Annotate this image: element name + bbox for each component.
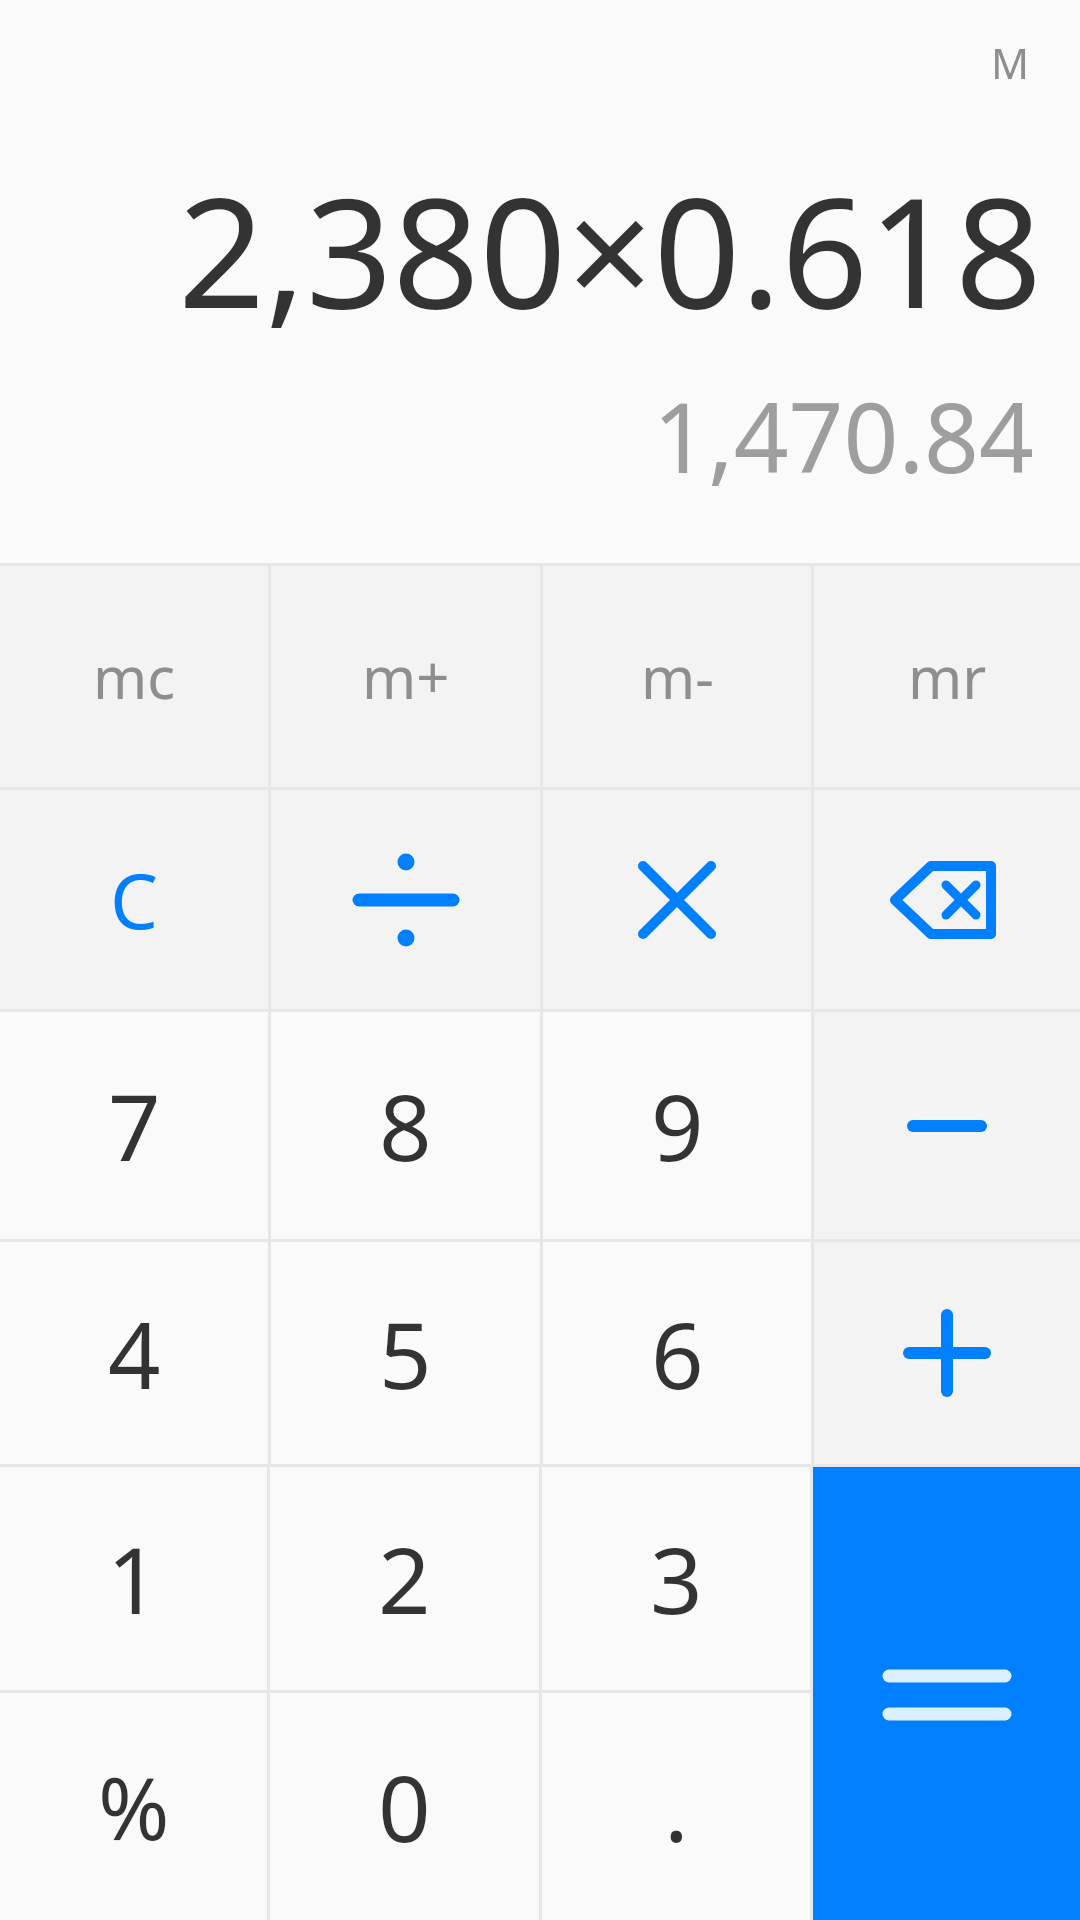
button[interactable]: 5	[271, 1242, 540, 1464]
staticText: mc	[93, 637, 176, 716]
staticText: 5	[379, 1291, 432, 1416]
button[interactable]: 9	[543, 1012, 811, 1239]
button[interactable]: 4	[0, 1242, 268, 1464]
button[interactable]: Backspace	[814, 790, 1080, 1009]
button[interactable]: 7	[0, 1012, 268, 1239]
staticText: 1	[107, 1516, 160, 1641]
button[interactable]: Minus	[814, 1012, 1080, 1239]
staticText: 2	[378, 1516, 431, 1641]
staticText: m-	[641, 637, 714, 716]
button[interactable]: Divide	[271, 790, 540, 1009]
staticText: 7	[108, 1063, 161, 1188]
staticText: 8	[379, 1063, 432, 1188]
button[interactable]: m+	[271, 566, 540, 787]
staticText: M	[991, 34, 1030, 91]
button[interactable]: %	[0, 1693, 267, 1920]
button[interactable]: Equals	[813, 1467, 1080, 1920]
button[interactable]: Plus	[814, 1242, 1080, 1464]
staticText: 4	[108, 1291, 161, 1416]
staticText: C	[110, 848, 159, 952]
staticText: .	[664, 1744, 689, 1869]
button[interactable]: Multiply	[543, 790, 811, 1009]
button[interactable]: .	[542, 1693, 810, 1920]
button[interactable]: 6	[543, 1242, 811, 1464]
staticText: mr	[908, 637, 987, 716]
staticText: 0	[378, 1744, 431, 1869]
button[interactable]: 8	[271, 1012, 540, 1239]
button[interactable]: mc	[0, 566, 268, 787]
button[interactable]: 1	[0, 1467, 267, 1690]
staticText: 6	[651, 1291, 704, 1416]
staticText: m+	[362, 637, 450, 716]
button[interactable]: 2	[270, 1467, 539, 1690]
staticText: 3	[650, 1516, 703, 1641]
button[interactable]: m-	[543, 566, 811, 787]
button[interactable]: C	[0, 790, 268, 1009]
button[interactable]: 3	[542, 1467, 810, 1690]
staticText: %	[98, 1748, 170, 1865]
button[interactable]: 0	[270, 1693, 539, 1920]
staticText: 2,380×0.618	[178, 146, 1042, 353]
staticText: 1,470.84	[653, 370, 1034, 501]
button[interactable]: mr	[814, 566, 1080, 787]
staticText: 9	[651, 1063, 704, 1188]
